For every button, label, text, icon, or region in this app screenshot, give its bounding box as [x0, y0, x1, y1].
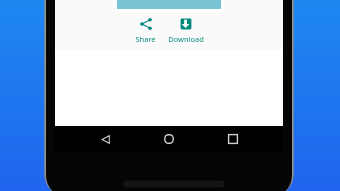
button[interactable]: Home — [154, 126, 184, 152]
button[interactable]: Share — [135, 18, 156, 44]
staticText: Share — [135, 34, 156, 44]
button[interactable]: Download — [168, 18, 204, 44]
staticText: Download — [168, 34, 204, 44]
button[interactable]: Recent apps — [218, 126, 248, 152]
button[interactable]: Back — [90, 126, 120, 152]
